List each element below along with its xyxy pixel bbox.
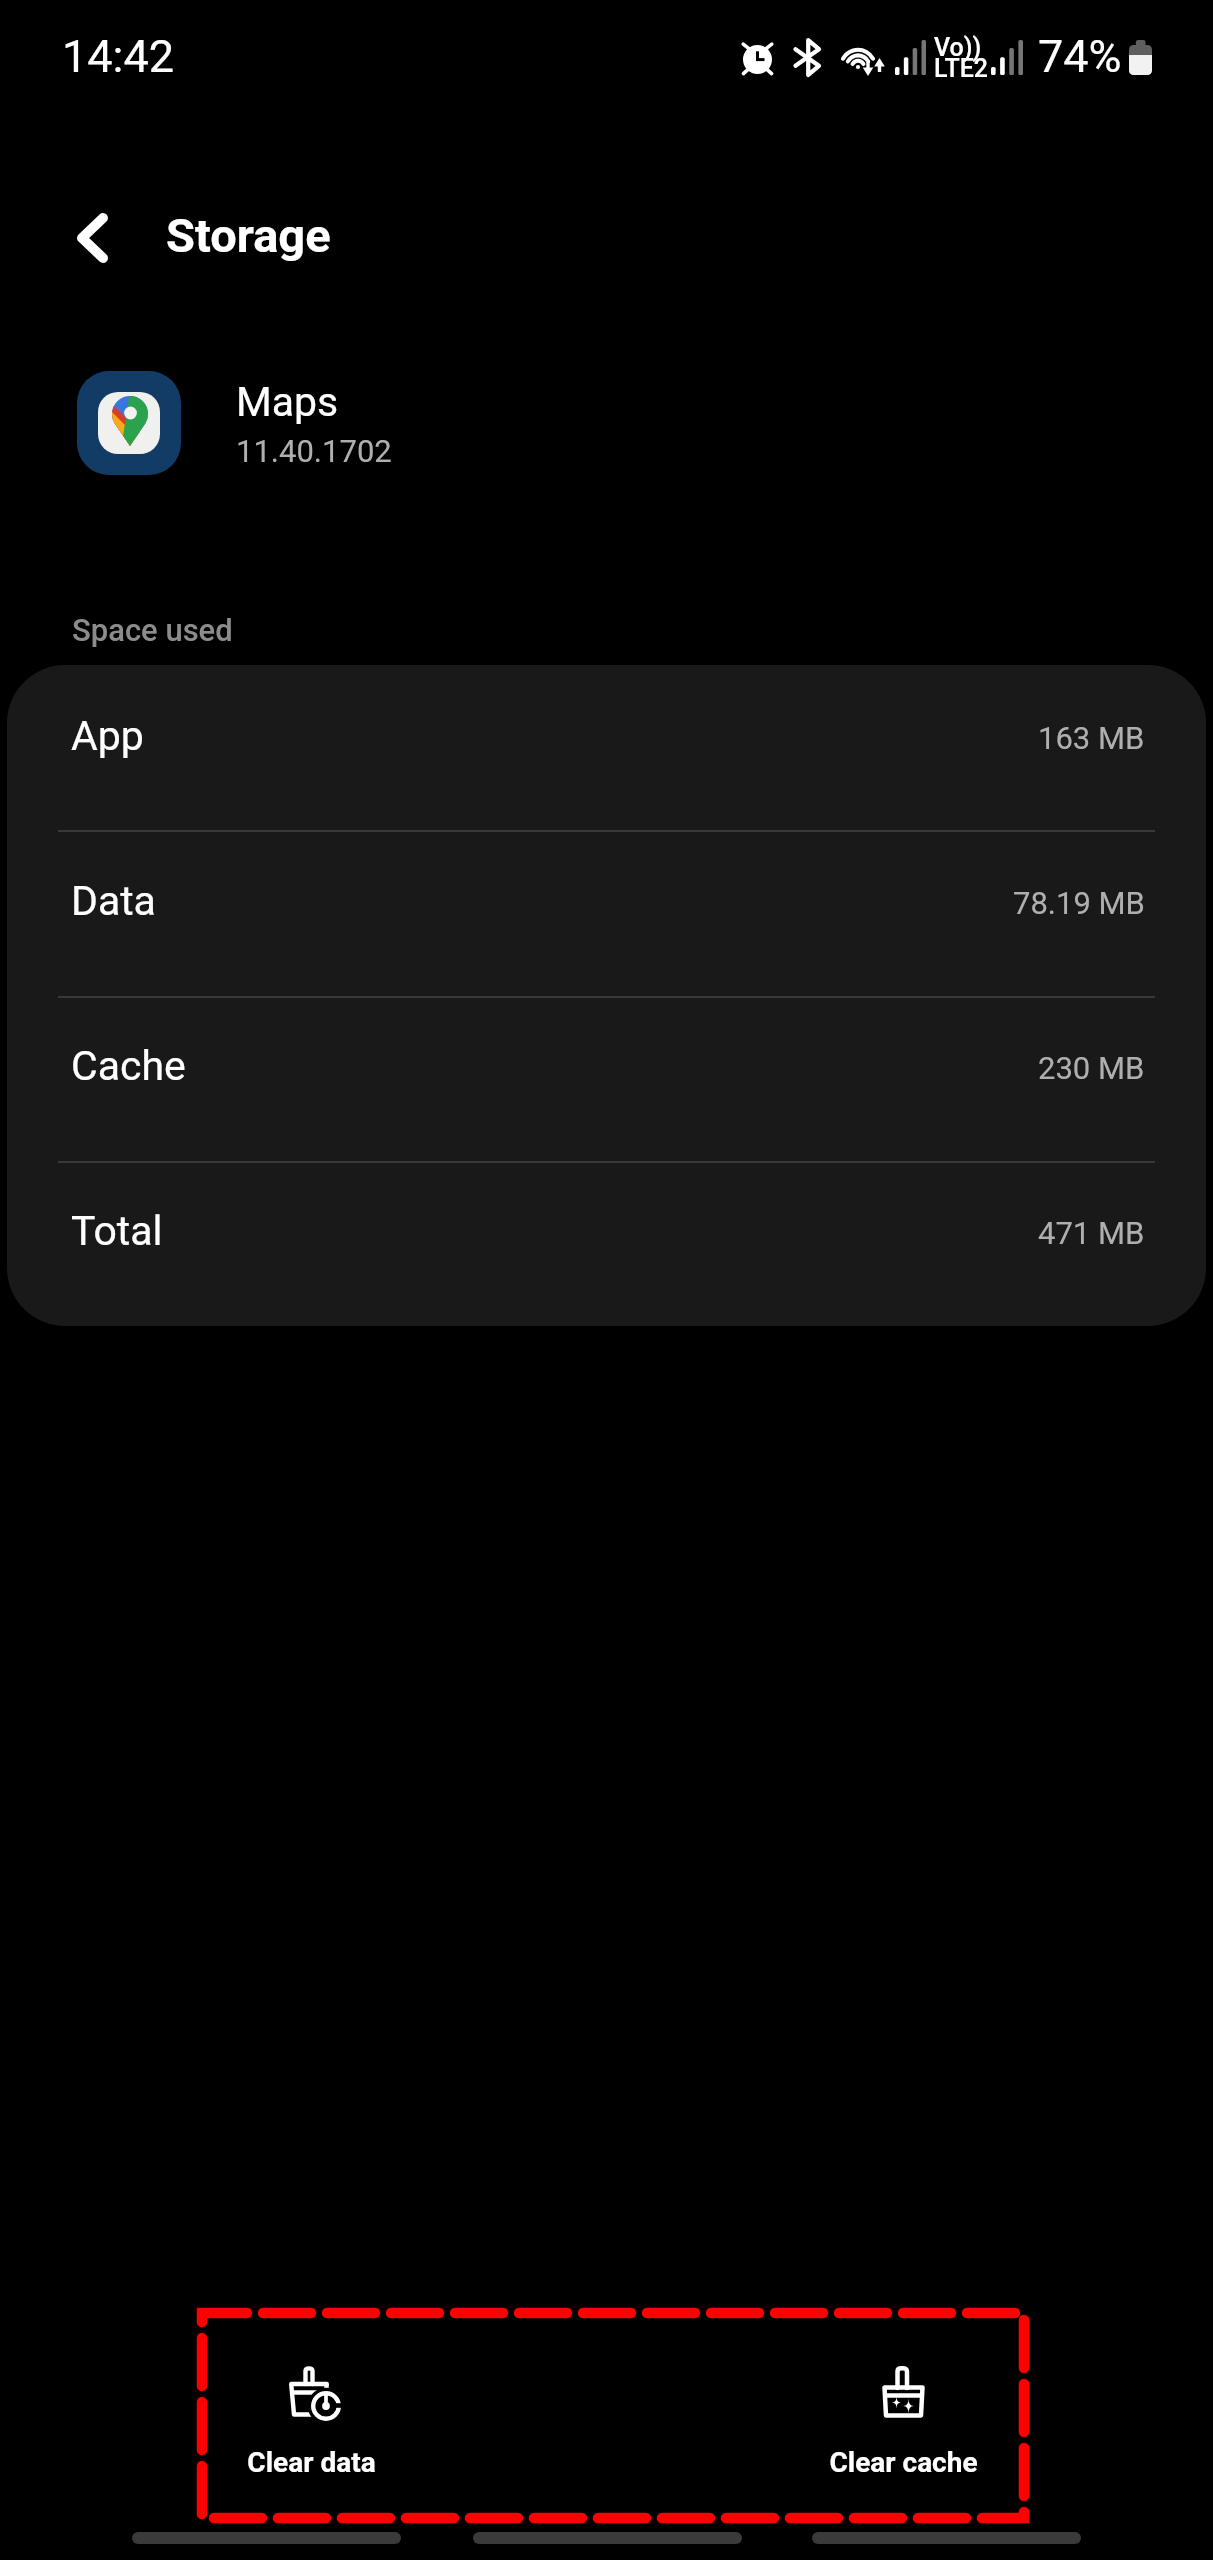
button[interactable]: Navigation button (132, 2532, 401, 2544)
staticText: Clear data (247, 2446, 376, 2479)
staticText: 74% (1038, 30, 1122, 83)
staticText: Storage (166, 208, 331, 263)
staticText: Total (71, 1207, 163, 1255)
staticText: 163 MB (1038, 720, 1145, 756)
staticText: 230 MB (1038, 1050, 1145, 1086)
staticText: Vo)) (934, 33, 982, 62)
button[interactable]: Navigation button (473, 2532, 742, 2544)
button[interactable]: Back (44, 190, 140, 286)
staticText: LTE2 (934, 54, 989, 83)
staticText: 78.19 MB (1013, 885, 1145, 921)
staticText: Maps (236, 378, 339, 426)
button[interactable]: Navigation button (812, 2532, 1081, 2544)
button[interactable]: Data (7, 830, 1206, 995)
button[interactable]: App (7, 665, 1206, 830)
staticText: Clear cache (829, 2446, 978, 2479)
staticText: 471 MB (1038, 1215, 1145, 1251)
staticText: Cache (71, 1042, 186, 1090)
staticText: 11.40.1702 (236, 433, 392, 469)
staticText: 14:42 (62, 30, 175, 83)
staticText: App (71, 712, 144, 760)
button[interactable]: Clear cache (786, 2366, 1021, 2479)
button[interactable]: Total (7, 1160, 1206, 1325)
button[interactable]: Clear data (201, 2366, 421, 2479)
staticText: Space used (72, 612, 233, 648)
staticText: Data (71, 877, 156, 925)
button[interactable]: Cache (7, 995, 1206, 1160)
